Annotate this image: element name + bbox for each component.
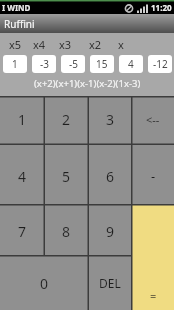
staticText: 1 — [12, 57, 18, 71]
button[interactable] — [44, 96, 88, 144]
staticText: 1 — [18, 110, 27, 128]
staticText: -5 — [69, 57, 78, 71]
button[interactable]: 1 — [3, 55, 27, 73]
button[interactable] — [44, 205, 88, 255]
staticText: 5 — [62, 167, 71, 185]
staticText: x3 — [59, 37, 72, 50]
staticText: 4 — [128, 57, 134, 71]
staticText: 9 — [106, 222, 115, 240]
staticText: <-- — [146, 112, 160, 127]
staticText: 6 — [106, 167, 115, 185]
button[interactable] — [0, 96, 44, 144]
button[interactable] — [88, 205, 132, 255]
staticText: x — [118, 37, 124, 50]
staticText: -12 — [153, 57, 168, 71]
staticText: x4 — [33, 37, 46, 50]
button[interactable]: -12 — [148, 55, 172, 73]
staticText: 15 — [96, 57, 108, 71]
staticText: = — [150, 288, 157, 303]
staticText: x2 — [89, 37, 102, 50]
staticText: 7 — [18, 222, 27, 240]
button[interactable] — [88, 96, 132, 144]
staticText: 11:20 — [151, 2, 172, 13]
button[interactable]: 4 — [119, 55, 143, 73]
button[interactable] — [88, 256, 132, 310]
staticText: I WIND — [2, 2, 31, 13]
staticText: - — [151, 167, 156, 185]
staticText: x5 — [9, 37, 22, 50]
button[interactable] — [0, 205, 44, 255]
staticText: 4 — [18, 167, 27, 185]
button[interactable]: -3 — [32, 55, 56, 73]
button[interactable] — [44, 145, 88, 204]
staticText: 0 — [40, 274, 49, 292]
button[interactable] — [0, 256, 88, 310]
staticText: 2 — [62, 110, 71, 128]
staticText: Ruffini — [4, 17, 35, 31]
button[interactable] — [132, 145, 174, 204]
button[interactable]: -5 — [61, 55, 85, 73]
staticText: -3 — [40, 57, 49, 71]
staticText: 3 — [106, 110, 115, 128]
staticText: DEL — [99, 275, 121, 291]
button[interactable] — [0, 145, 44, 204]
staticText: 8 — [62, 222, 71, 240]
button[interactable] — [132, 96, 174, 144]
button[interactable] — [88, 145, 132, 204]
button[interactable]: 15 — [90, 55, 114, 73]
staticText: (x+2)(x+1)(x-1)(x-2)(1x-3) — [34, 77, 141, 90]
button[interactable]: = — [132, 205, 174, 310]
